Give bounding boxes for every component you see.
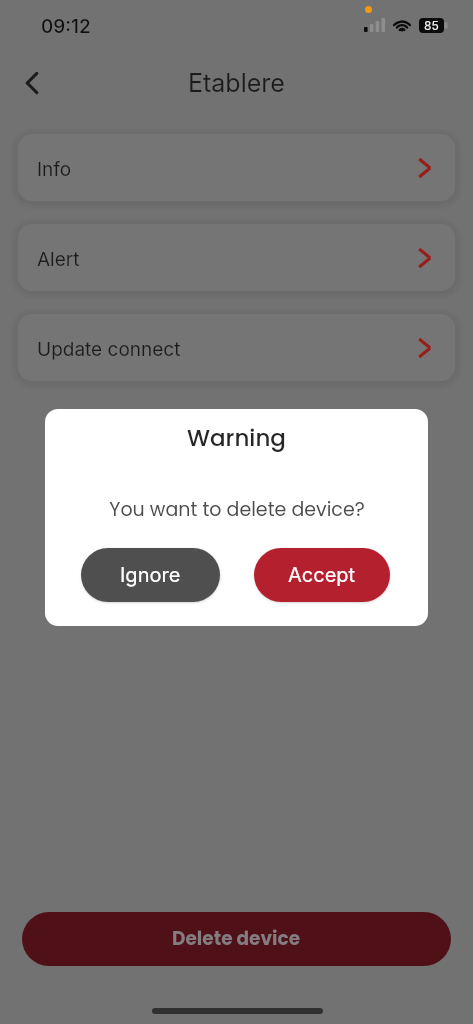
staticText: Update connect — [37, 338, 181, 361]
button[interactable]: Info — [18, 134, 455, 201]
button[interactable]: Ignore — [81, 548, 220, 602]
button[interactable]: Delete device — [22, 912, 451, 966]
staticText: Delete device — [172, 926, 301, 952]
staticText: Ignore — [120, 563, 181, 587]
button[interactable]: Accept — [254, 548, 390, 602]
button[interactable]: Alert — [18, 224, 455, 291]
staticText: 09:12 — [41, 15, 91, 38]
staticText: 85 — [424, 18, 439, 33]
staticText: Warning — [187, 422, 286, 454]
button[interactable]: Update connect — [18, 314, 455, 381]
staticText: Accept — [288, 563, 356, 587]
staticText: Etablere — [188, 68, 285, 98]
staticText: Alert — [37, 248, 80, 271]
button[interactable]: Back — [10, 61, 54, 105]
staticText: You want to delete device? — [109, 496, 365, 523]
staticText: Info — [37, 158, 72, 181]
